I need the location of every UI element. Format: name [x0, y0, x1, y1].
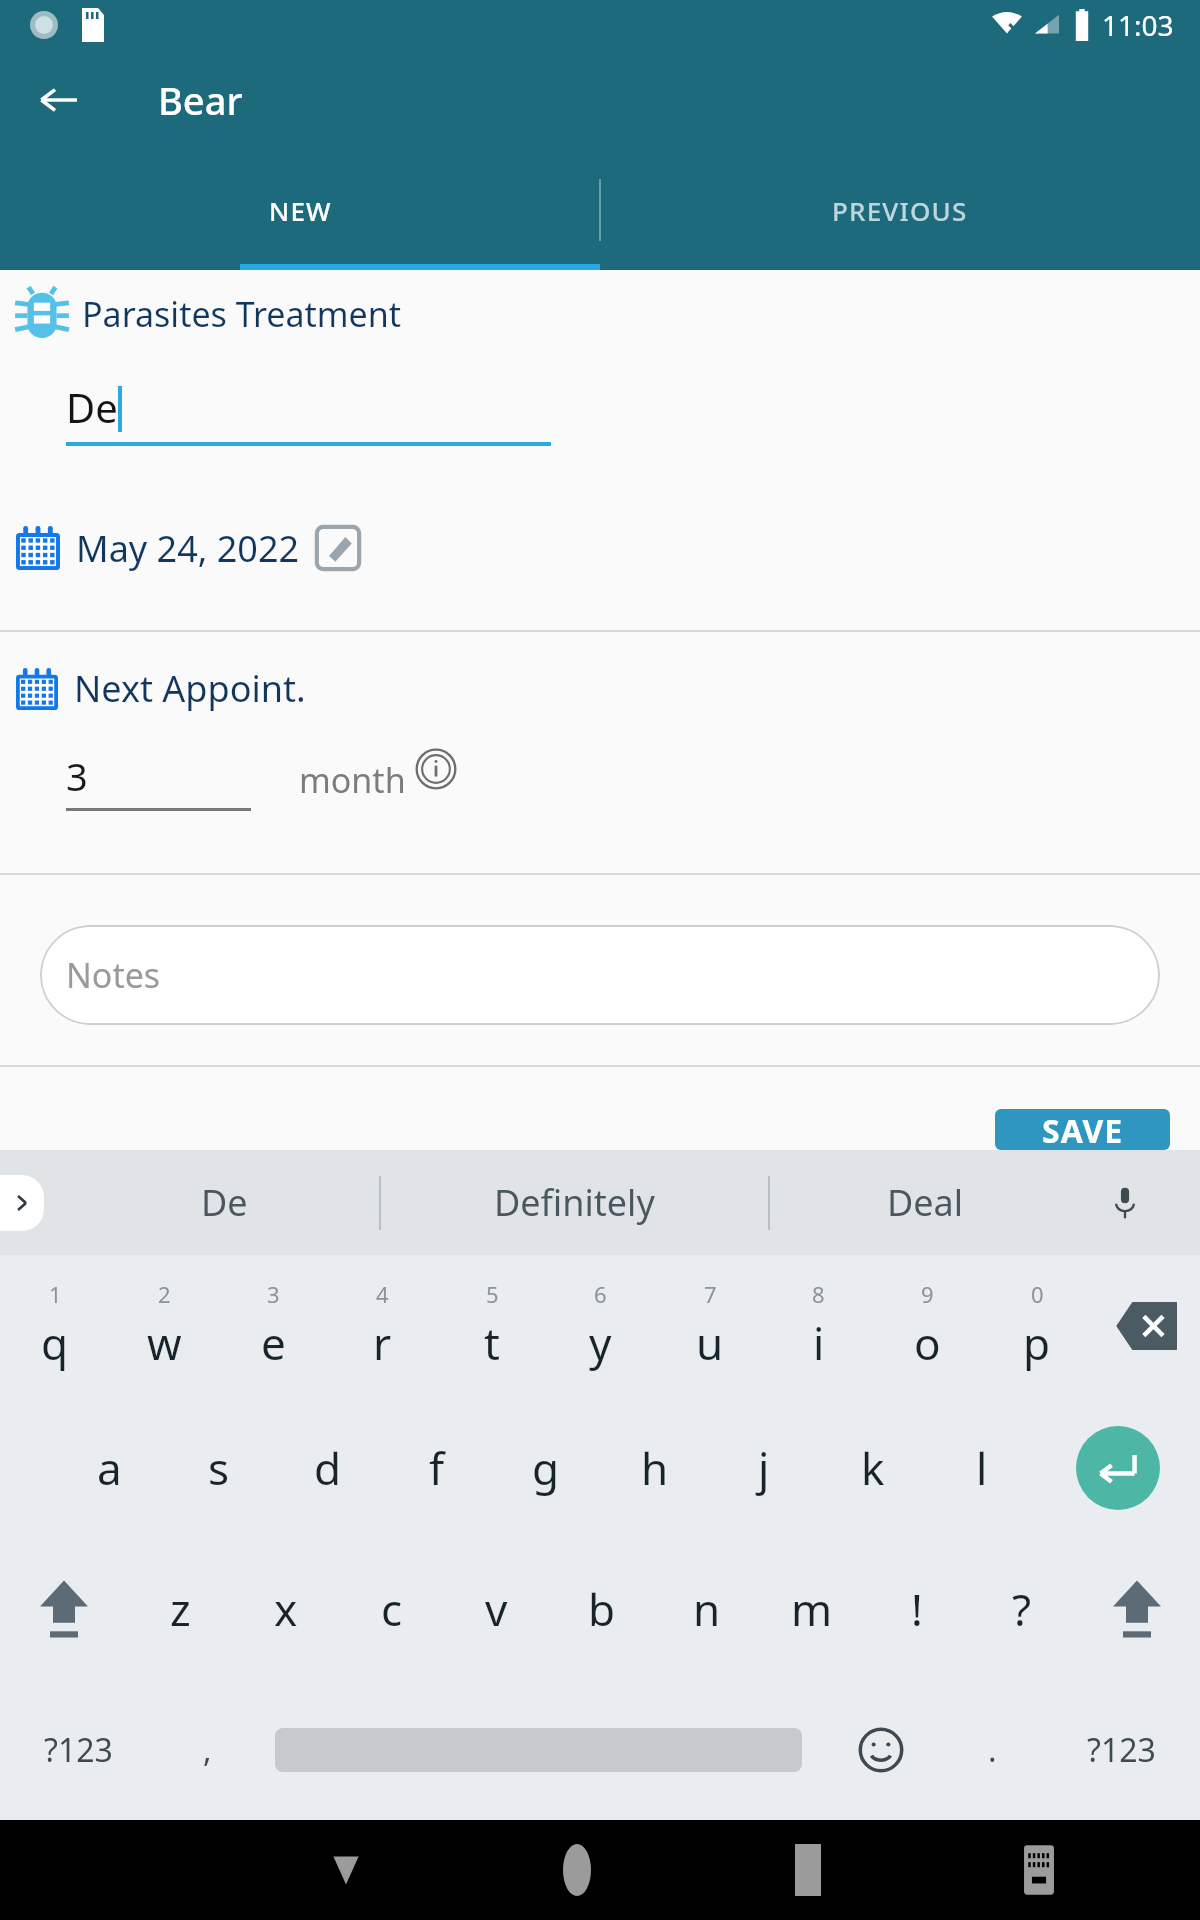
button[interactable]: v: [444, 1538, 549, 1679]
staticText: w: [147, 1313, 182, 1373]
staticText: s: [208, 1438, 230, 1498]
button[interactable]: n: [654, 1538, 759, 1679]
button[interactable]: Voice input: [1080, 1150, 1170, 1255]
staticText: 3: [66, 750, 88, 802]
staticText: 5: [486, 1279, 499, 1309]
button[interactable]: De: [70, 1150, 379, 1255]
button[interactable]: 3: [66, 750, 251, 811]
button[interactable]: SAVE: [995, 1109, 1170, 1150]
button[interactable]: Enter: [1036, 1397, 1200, 1538]
button[interactable]: ?: [969, 1538, 1074, 1679]
button[interactable]: k: [818, 1397, 927, 1538]
staticText: De: [66, 380, 118, 434]
button[interactable]: 8: [764, 1255, 873, 1397]
button[interactable]: NEW: [0, 150, 600, 270]
staticText: month: [299, 757, 406, 803]
button[interactable]: Home: [461, 1820, 692, 1920]
button[interactable]: b: [549, 1538, 654, 1679]
staticText: Definitely: [494, 1178, 655, 1227]
button[interactable]: 5: [437, 1255, 546, 1397]
staticText: 8: [812, 1279, 825, 1309]
staticText: 1: [49, 1279, 62, 1309]
button[interactable]: f: [382, 1397, 491, 1538]
button[interactable]: Info: [412, 745, 460, 793]
staticText: ?123: [44, 1728, 113, 1772]
button[interactable]: h: [600, 1397, 709, 1538]
button[interactable]: ,: [157, 1679, 258, 1820]
button[interactable]: l: [927, 1397, 1036, 1538]
staticText: j: [758, 1438, 770, 1498]
staticText: k: [861, 1438, 885, 1498]
staticText: Bear: [158, 74, 243, 126]
staticText: 0: [1031, 1279, 1044, 1309]
button[interactable]: g: [491, 1397, 600, 1538]
button[interactable]: Expand suggestions: [0, 1175, 44, 1231]
button[interactable]: Deal: [770, 1150, 1080, 1255]
button[interactable]: Back: [230, 1820, 461, 1920]
button[interactable]: !: [864, 1538, 969, 1679]
staticText: h: [641, 1438, 669, 1498]
button[interactable]: m: [759, 1538, 864, 1679]
button[interactable]: 4: [328, 1255, 437, 1397]
staticText: t: [484, 1313, 500, 1373]
staticText: 6: [594, 1279, 607, 1309]
button[interactable]: c: [339, 1538, 444, 1679]
button[interactable]: a: [55, 1397, 164, 1538]
button[interactable]: s: [164, 1397, 273, 1538]
button[interactable]: 1: [0, 1255, 110, 1397]
staticText: De: [201, 1178, 248, 1227]
button[interactable]: 3: [219, 1255, 328, 1397]
staticText: b: [588, 1579, 616, 1639]
staticText: ,: [203, 1728, 212, 1772]
button[interactable]: Backspace: [1091, 1255, 1200, 1397]
button[interactable]: 9: [873, 1255, 982, 1397]
button[interactable]: Edit date: [312, 522, 364, 574]
staticText: q: [41, 1313, 69, 1373]
staticText: ?: [1012, 1579, 1032, 1639]
button[interactable]: 6: [546, 1255, 655, 1397]
staticText: i: [813, 1313, 825, 1373]
staticText: Deal: [887, 1178, 964, 1227]
staticText: l: [976, 1438, 988, 1498]
button[interactable]: 0: [982, 1255, 1091, 1397]
staticText: m: [791, 1579, 833, 1639]
button[interactable]: Shift: [0, 1538, 127, 1679]
staticText: Next Appoint.: [74, 664, 306, 713]
staticText: e: [261, 1313, 286, 1373]
staticText: a: [97, 1438, 122, 1498]
button[interactable]: x: [233, 1538, 339, 1679]
staticText: PREVIOUS: [832, 193, 968, 228]
button[interactable]: z: [127, 1538, 233, 1679]
staticText: g: [532, 1438, 560, 1498]
staticText: f: [429, 1438, 445, 1498]
button[interactable]: Change keyboard: [923, 1820, 1154, 1920]
button[interactable]: Shift: [1074, 1538, 1200, 1679]
button[interactable]: j: [709, 1397, 818, 1538]
button[interactable]: Definitely: [381, 1150, 768, 1255]
staticText: n: [693, 1579, 721, 1639]
button[interactable]: ?123: [1043, 1679, 1200, 1820]
button[interactable]: Back: [26, 67, 92, 133]
button[interactable]: d: [273, 1397, 382, 1538]
staticText: SAVE: [1042, 1109, 1124, 1150]
button[interactable]: PREVIOUS: [600, 150, 1200, 270]
button[interactable]: Space: [258, 1679, 819, 1820]
button[interactable]: Emoji: [819, 1679, 942, 1820]
button[interactable]: De: [66, 380, 551, 446]
staticText: 4: [376, 1279, 389, 1309]
button[interactable]: May 24, 2022: [0, 518, 1200, 578]
button[interactable]: Recent apps: [692, 1820, 923, 1920]
button[interactable]: 7: [655, 1255, 764, 1397]
staticText: !: [911, 1579, 923, 1639]
staticText: .: [988, 1728, 997, 1772]
staticText: x: [274, 1579, 298, 1639]
button[interactable]: 2: [110, 1255, 219, 1397]
button[interactable]: .: [942, 1679, 1043, 1820]
staticText: z: [170, 1579, 191, 1639]
button[interactable]: Notes: [40, 925, 1160, 1025]
staticText: y: [589, 1313, 612, 1373]
staticText: o: [914, 1313, 941, 1373]
staticText: NEW: [269, 193, 332, 228]
button[interactable]: ?123: [0, 1679, 157, 1820]
staticText: u: [696, 1313, 724, 1373]
